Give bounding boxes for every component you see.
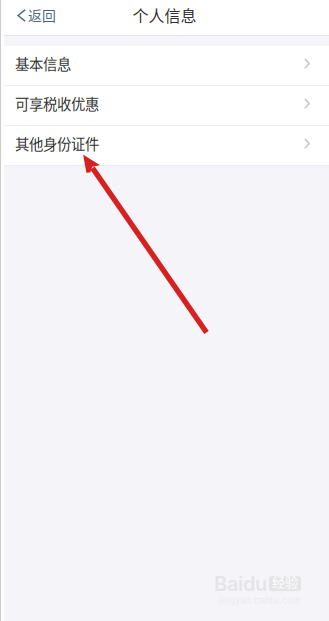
- staticText: jingyan.baidu.com: [219, 595, 301, 606]
- staticText: 经验: [272, 572, 298, 591]
- button[interactable]: 基本信息: [0, 46, 329, 85]
- staticText: 其他身份证件: [15, 133, 99, 154]
- button[interactable]: 返回: [0, 0, 68, 35]
- staticText: Baidu: [214, 571, 267, 596]
- staticText: 基本信息: [15, 53, 71, 74]
- staticText: 可享税收优惠: [15, 93, 99, 114]
- button[interactable]: 其他身份证件: [0, 126, 329, 165]
- staticText: 个人信息: [132, 3, 196, 27]
- staticText: 返回: [28, 5, 56, 25]
- button[interactable]: 可享税收优惠: [0, 86, 329, 125]
